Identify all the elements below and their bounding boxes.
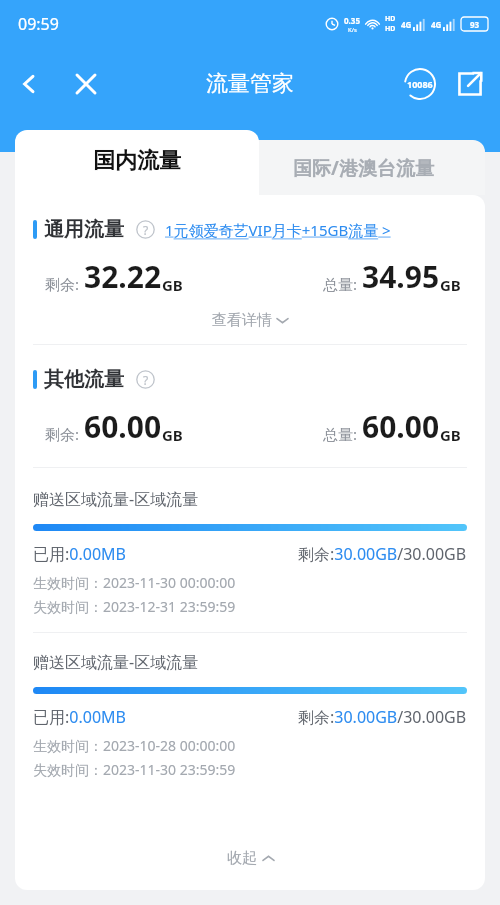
staticText: 其他流量	[44, 367, 124, 392]
staticText: ?	[143, 372, 149, 388]
staticText: 93	[470, 19, 480, 30]
staticText: 1元领爱奇艺VIP月卡+15GB流量 >	[165, 220, 391, 240]
button[interactable]: Close	[64, 62, 108, 106]
staticText: 已用:0.00MB	[33, 706, 126, 728]
staticText: 已用:0.00MB	[33, 543, 126, 565]
staticText: 生效时间：2023-10-28 00:00:00	[33, 736, 236, 755]
button[interactable]: Back	[8, 63, 50, 105]
button[interactable]: 收起	[33, 849, 467, 890]
button[interactable]: 1元领爱奇艺VIP月卡+15GB流量 >	[165, 220, 391, 240]
staticText: 失效时间：2023-12-31 23:59:59	[33, 597, 236, 616]
staticText: 收起	[227, 849, 257, 868]
staticText: 总量:	[323, 424, 358, 444]
staticText: 10086	[407, 78, 433, 90]
staticText: GB	[440, 275, 461, 295]
staticText: 4G	[401, 19, 412, 30]
staticText: GB	[162, 275, 183, 295]
staticText: 失效时间：2023-11-30 23:59:59	[33, 760, 236, 779]
button[interactable]: 国内流量	[15, 130, 259, 195]
staticText: 09:59	[18, 13, 59, 35]
staticText: 剩余:30.00GB/30.00GB	[298, 706, 467, 728]
staticText: 赠送区域流量-区域流量	[33, 488, 199, 510]
staticText: 总量:	[323, 274, 358, 294]
staticText: 流量管家	[206, 70, 294, 98]
staticText: 国际/港澳台流量	[293, 155, 434, 181]
staticText: HD	[385, 24, 396, 34]
staticText: 查看详情	[212, 311, 272, 330]
button[interactable]: 查看详情	[33, 311, 467, 330]
staticText: 4G	[431, 19, 442, 30]
staticText: 国内流量	[93, 147, 181, 175]
button[interactable]: Call 10086	[400, 64, 440, 104]
staticText: 60.00	[84, 406, 162, 447]
staticText: K/s	[348, 26, 357, 34]
staticText: 剩余:	[45, 424, 80, 444]
staticText: ?	[143, 222, 149, 238]
staticText: GB	[440, 425, 461, 445]
staticText: 剩余:	[45, 274, 80, 294]
staticText: 32.22	[84, 256, 162, 297]
staticText: HD	[385, 14, 396, 24]
staticText: 生效时间：2023-11-30 00:00:00	[33, 573, 236, 592]
staticText: 通用流量	[44, 217, 124, 242]
staticText: GB	[162, 425, 183, 445]
staticText: 赠送区域流量-区域流量	[33, 651, 199, 673]
button[interactable]: Share	[450, 64, 490, 104]
staticText: 0.35	[344, 15, 360, 26]
staticText: 34.95	[362, 256, 440, 297]
button[interactable]: 国际/港澳台流量	[241, 140, 485, 195]
staticText: 60.00	[362, 406, 440, 447]
staticText: 剩余:30.00GB/30.00GB	[298, 543, 467, 565]
